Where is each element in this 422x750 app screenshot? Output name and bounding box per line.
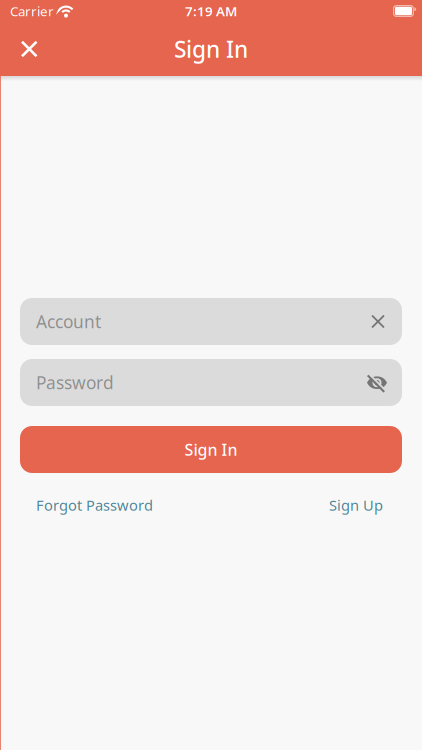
staticText: Sign In — [184, 439, 237, 460]
staticText: Sign Up — [329, 495, 383, 515]
button[interactable]: Sign In — [20, 426, 402, 473]
staticText: Sign In — [174, 34, 248, 64]
button[interactable]: Sign Up — [329, 495, 383, 515]
button[interactable]: Show password — [362, 367, 392, 397]
button[interactable]: Close — [0, 26, 36, 72]
button[interactable]: Clear text — [364, 307, 392, 335]
staticText: Account — [36, 310, 101, 333]
staticText: Carrier — [10, 2, 54, 20]
staticText: 7:19 AM — [185, 2, 237, 20]
staticText: Password — [36, 371, 114, 394]
staticText: Forgot Password — [36, 495, 153, 515]
button[interactable]: Forgot Password — [36, 495, 153, 515]
